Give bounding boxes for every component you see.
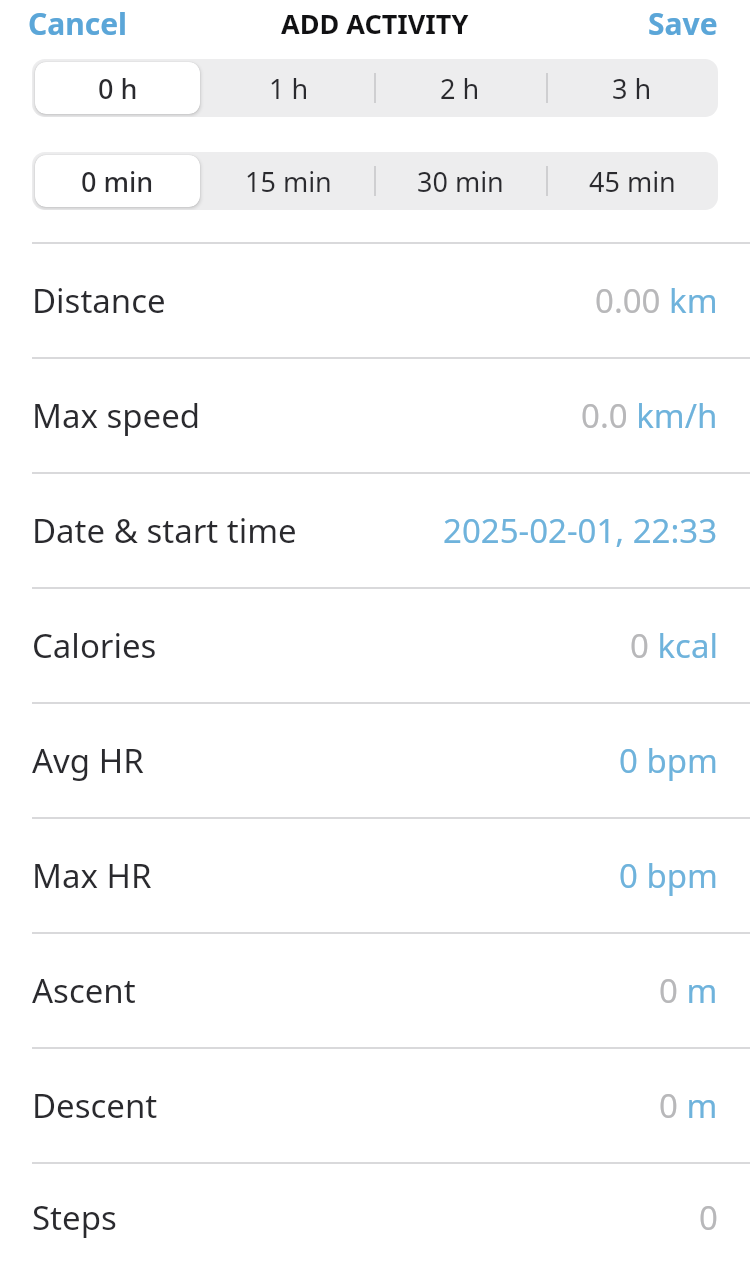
staticText: 0 m — [659, 1083, 718, 1128]
staticText: Avg HR — [32, 738, 144, 783]
button[interactable]: 45 min — [549, 155, 715, 207]
staticText: 2 h — [440, 70, 480, 107]
button[interactable]: Cancel — [28, 3, 128, 44]
button[interactable]: Calories — [0, 587, 750, 702]
button[interactable]: 1 h — [206, 62, 371, 114]
staticText: 0 kcal — [630, 623, 718, 668]
staticText: 15 min — [245, 163, 332, 200]
button[interactable]: Max speed — [0, 357, 750, 472]
staticText: 0 min — [81, 163, 154, 200]
button[interactable]: 0 h — [35, 62, 200, 114]
staticText: 0 m — [659, 968, 718, 1013]
staticText: 45 min — [589, 163, 676, 200]
staticText: Max speed — [32, 393, 201, 438]
staticText: 2025-02-01, 22:33 — [443, 508, 718, 553]
staticText: Save — [648, 3, 718, 44]
staticText: Ascent — [32, 968, 136, 1013]
button[interactable]: Max HR — [0, 817, 750, 932]
staticText: 3 h — [612, 70, 652, 107]
button[interactable]: 0 min — [35, 155, 200, 207]
staticText: Calories — [32, 623, 157, 668]
staticText: 0.00 km — [595, 278, 718, 323]
staticText: 0 bpm — [619, 738, 718, 783]
staticText: Date & start time — [32, 508, 297, 553]
staticText: Cancel — [28, 3, 128, 44]
button[interactable]: 30 min — [377, 155, 543, 207]
button[interactable]: Ascent — [0, 932, 750, 1047]
button[interactable]: Avg HR — [0, 702, 750, 817]
staticText: 0 h — [98, 70, 138, 107]
button[interactable]: 3 h — [549, 62, 715, 114]
staticText: 0 bpm — [619, 853, 718, 898]
staticText: 0.0 km/h — [581, 393, 718, 438]
staticText: 30 min — [417, 163, 504, 200]
staticText: Max HR — [32, 853, 152, 898]
button[interactable]: 2 h — [377, 62, 543, 114]
staticText: Steps — [32, 1195, 117, 1240]
staticText: ADD ACTIVITY — [281, 5, 469, 42]
button[interactable]: Date & start time — [0, 472, 750, 587]
staticText: Distance — [32, 278, 166, 323]
staticText: Descent — [32, 1083, 158, 1128]
button[interactable]: Distance — [0, 242, 750, 357]
staticText: 0 — [699, 1195, 718, 1240]
button[interactable]: 15 min — [206, 155, 371, 207]
button[interactable]: Steps — [0, 1162, 750, 1270]
staticText: 1 h — [269, 70, 309, 107]
button[interactable]: Descent — [0, 1047, 750, 1162]
button[interactable]: Save — [648, 3, 718, 44]
